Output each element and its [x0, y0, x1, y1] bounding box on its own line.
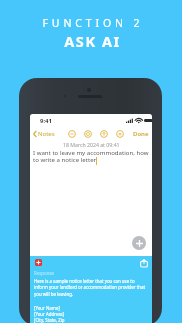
button[interactable]: Notes [32, 128, 56, 140]
staticText: Notes [38, 130, 55, 138]
button[interactable]: Tool 2 [99, 129, 108, 138]
button[interactable]: Tool 0 [67, 129, 76, 138]
staticText: FUNCTION 2 [42, 16, 144, 30]
button[interactable]: Tool 1 [83, 129, 92, 138]
staticText: ASK AI [64, 31, 121, 51]
button[interactable]: Tool 3 [115, 129, 124, 138]
button[interactable]: Share [139, 258, 149, 268]
button[interactable]: Shortcuts app [35, 259, 42, 266]
staticText: Here is a sample notice letter that you … [34, 278, 147, 298]
staticText: I want to leave my accommodation, how to… [33, 148, 150, 164]
staticText: 18 March 2024 at 09:41 [63, 141, 120, 148]
staticText: 9:41 [40, 117, 52, 125]
staticText: Response [34, 270, 54, 276]
staticText: [Your Name] [Your Address] [City, State,… [34, 305, 150, 323]
staticText: Done [133, 130, 149, 138]
button[interactable]: Add [132, 236, 146, 250]
button[interactable]: Done [130, 128, 152, 140]
